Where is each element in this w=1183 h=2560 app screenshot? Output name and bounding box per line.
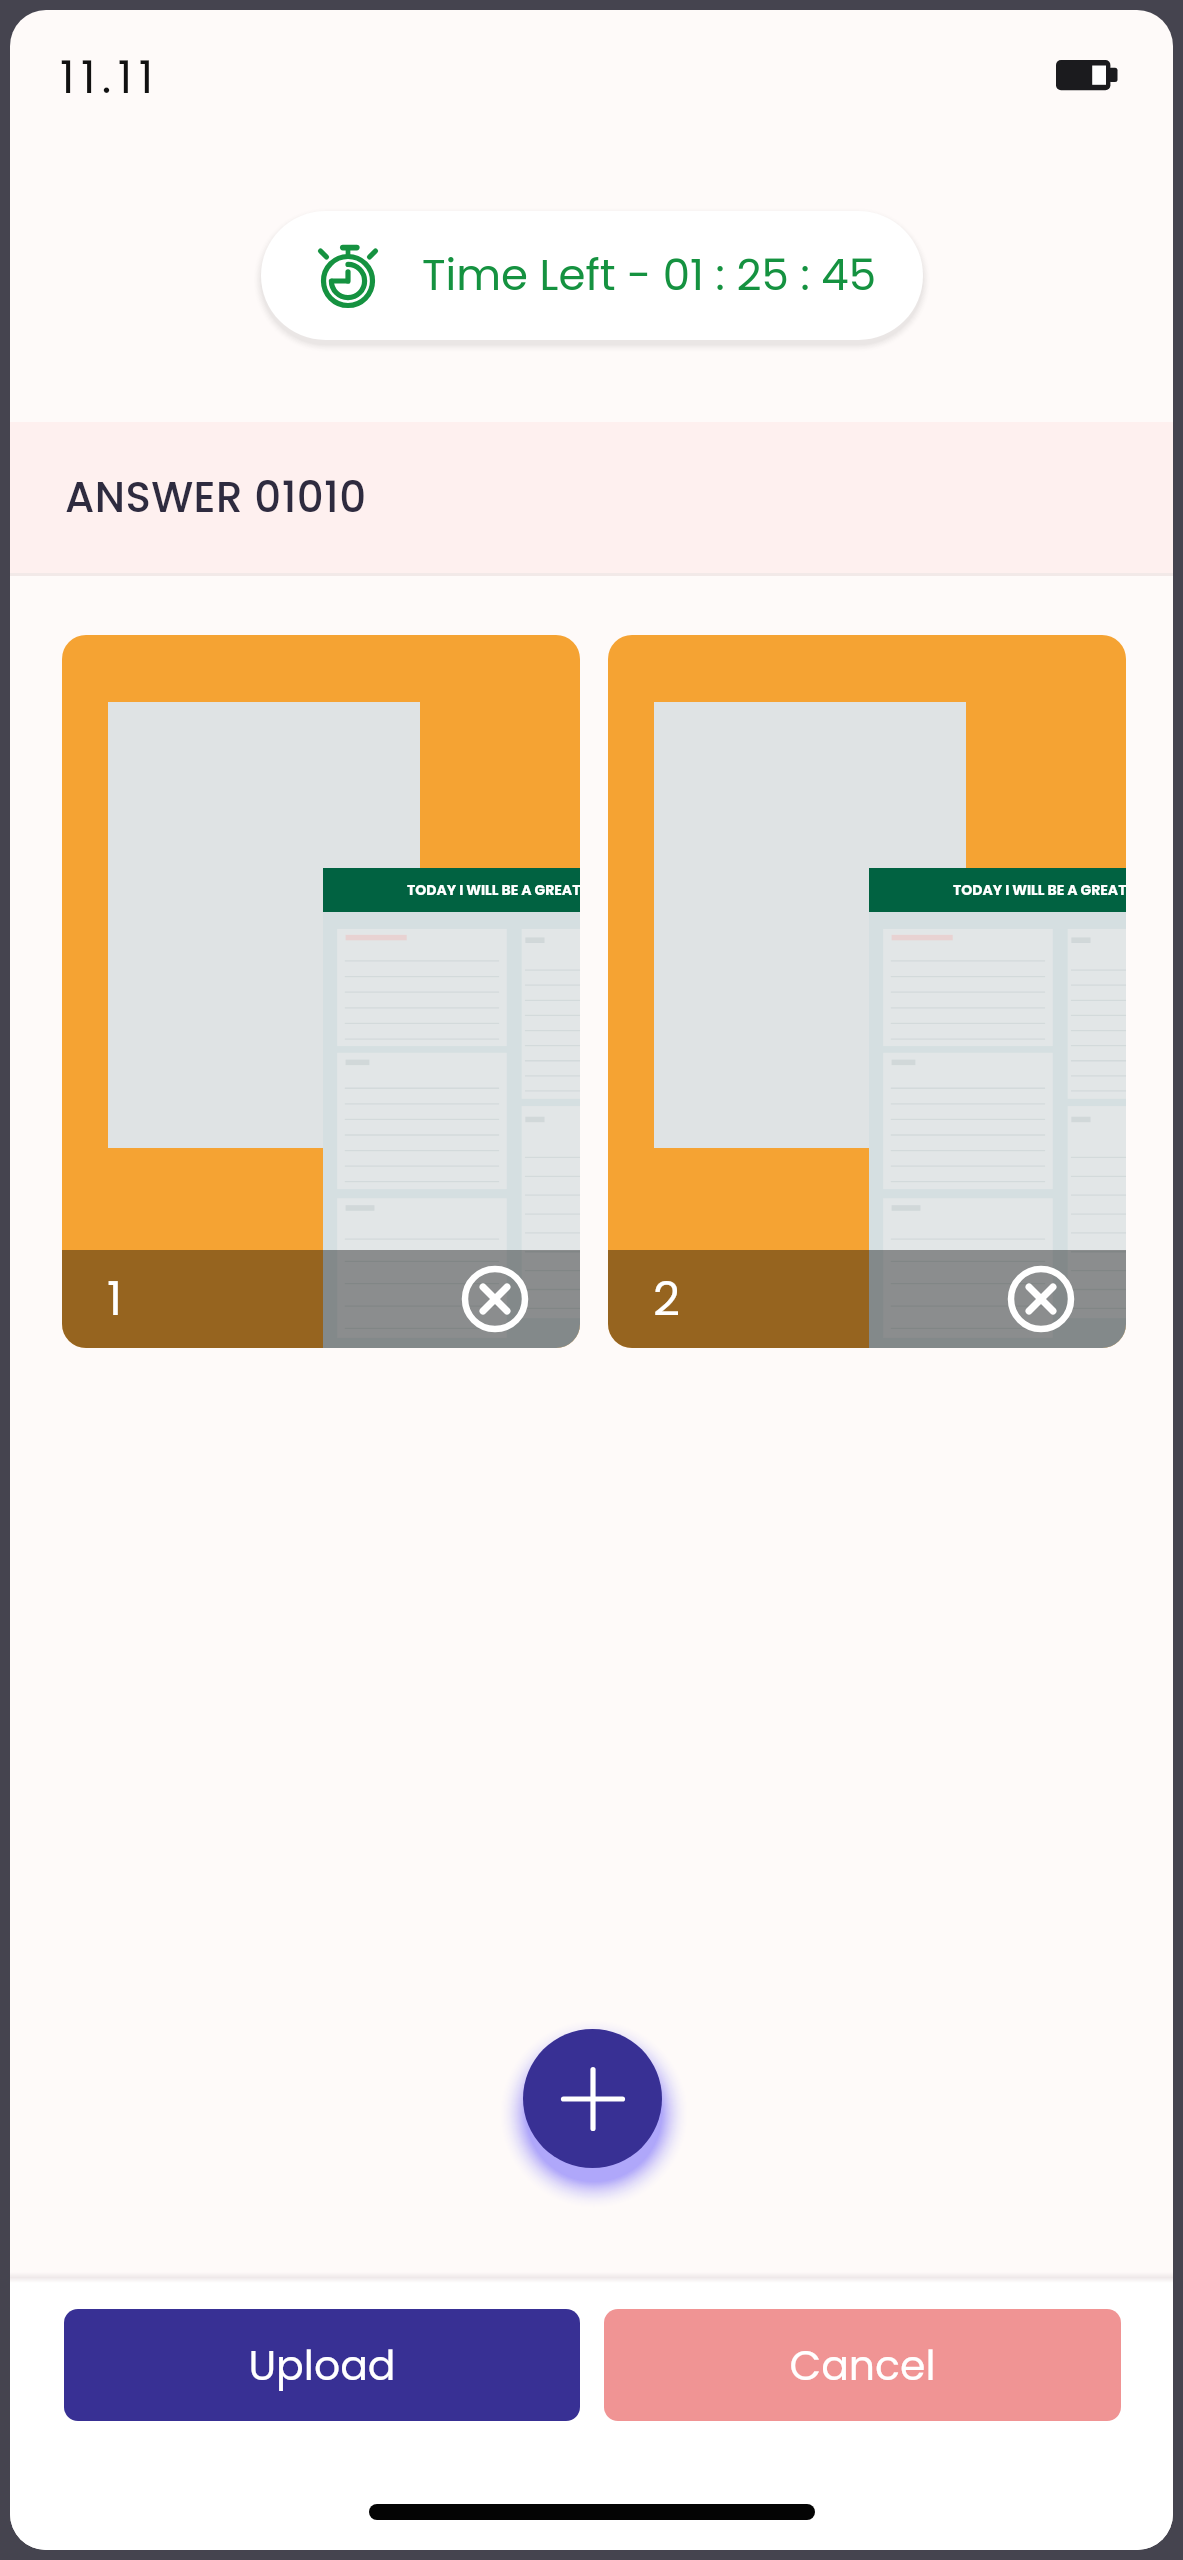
- staticText: TODAY I WILL BE A GREAT STUDENT: [953, 880, 1126, 900]
- button[interactable]: Cancel: [604, 2309, 1121, 2421]
- staticText: Cancel: [789, 2337, 936, 2394]
- staticText: 2: [653, 1266, 681, 1332]
- button[interactable]: Time Left - 01 : 25 : 45: [261, 211, 923, 340]
- button[interactable]: TODAY I WILL BE A GREAT STUDENT: [608, 635, 1126, 1348]
- staticText: Time Left - 01 : 25 : 45: [422, 244, 876, 305]
- staticText: 1: [107, 1266, 123, 1332]
- staticText: ANSWER 01010: [65, 468, 367, 527]
- staticText: TODAY I WILL BE A GREAT STUDENT: [407, 880, 580, 900]
- button[interactable]: Remove image 2: [1004, 1262, 1078, 1336]
- button[interactable]: TODAY I WILL BE A GREAT STUDENT: [62, 635, 580, 1348]
- button[interactable]: Upload: [64, 2309, 580, 2421]
- button[interactable]: Remove image 1: [458, 1262, 532, 1336]
- staticText: Upload: [248, 2337, 396, 2394]
- staticText: 11.11: [60, 46, 160, 109]
- button[interactable]: Add image: [523, 2029, 662, 2168]
